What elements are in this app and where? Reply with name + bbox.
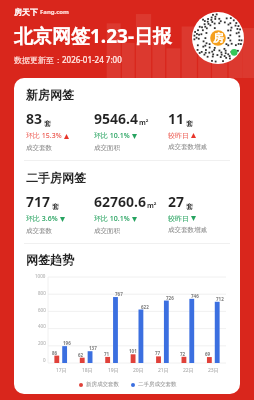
button[interactable]: 二手房网签	[14, 161, 240, 243]
staticText: 成交面积	[94, 227, 120, 235]
staticText: 77	[155, 350, 161, 356]
staticText: 新房成交套数	[86, 381, 119, 388]
staticText: 137	[89, 345, 97, 351]
staticText: 成交套数	[26, 227, 52, 235]
staticText: 196	[63, 340, 71, 346]
staticText: 600	[38, 307, 46, 313]
staticText: 1000	[35, 273, 46, 279]
staticText: 9546.4	[94, 109, 138, 128]
staticText: m²	[139, 118, 149, 128]
staticText: 400	[38, 323, 46, 329]
staticText: 0	[43, 357, 46, 363]
staticText: 622	[141, 304, 149, 310]
staticText: 18日	[82, 367, 93, 374]
staticText: 62	[78, 352, 84, 358]
staticText: 成交套数增减	[168, 143, 207, 151]
staticText: 22日	[183, 367, 194, 374]
staticText: 新房网签	[26, 87, 74, 102]
staticText: 101	[129, 348, 137, 354]
staticText: 69	[205, 351, 211, 357]
staticText: 套	[52, 202, 59, 211]
staticText: 成交套数	[26, 144, 52, 152]
staticText: 200	[38, 340, 46, 346]
staticText: 数据更新至：2026-01-24 7:00	[14, 54, 122, 65]
staticText: 746	[191, 293, 199, 299]
staticText: 726	[166, 295, 174, 301]
staticText: 11	[168, 109, 185, 128]
staticText: 800	[38, 290, 46, 296]
staticText: 19日	[108, 367, 119, 374]
staticText: 二手房网签	[26, 170, 86, 185]
staticText: Fang.com	[40, 8, 69, 16]
staticText: 环比 10.1%	[94, 214, 130, 224]
staticText: 72	[180, 351, 186, 357]
staticText: 套	[186, 119, 193, 128]
staticText: 86	[52, 350, 58, 356]
staticText: 套	[44, 119, 51, 128]
staticText: 成交面积	[94, 144, 120, 152]
staticText: 62760.6	[94, 192, 146, 211]
staticText: 20日	[133, 367, 144, 374]
staticText: 环比 3.6%	[26, 214, 58, 224]
staticText: 17日	[56, 367, 67, 374]
staticText: 较昨日	[168, 131, 189, 140]
staticText: 北京网签1.23-日报	[14, 23, 173, 49]
staticText: 23日	[208, 367, 219, 374]
staticText: 套	[186, 202, 193, 211]
staticText: 83	[26, 109, 43, 128]
staticText: 767	[115, 291, 123, 297]
staticText: 环比 10.1%	[94, 131, 130, 141]
staticText: 712	[216, 296, 224, 302]
staticText: 717	[26, 192, 51, 211]
staticText: 房	[213, 31, 224, 45]
staticText: 27	[168, 192, 185, 211]
staticText: 房天下	[14, 7, 38, 17]
button[interactable]: 新房网签	[14, 78, 240, 160]
staticText: 71	[104, 351, 110, 357]
staticText: 较昨日	[168, 214, 189, 223]
staticText: 二手房成交套数	[138, 381, 177, 388]
staticText: 环比 15.3%	[26, 131, 62, 141]
button[interactable]: 扫码二维码	[192, 12, 244, 64]
staticText: 成交套数增减	[168, 226, 207, 234]
staticText: 21日	[158, 367, 169, 374]
staticText: m²	[147, 201, 157, 211]
staticText: 网签趋势	[26, 252, 74, 267]
